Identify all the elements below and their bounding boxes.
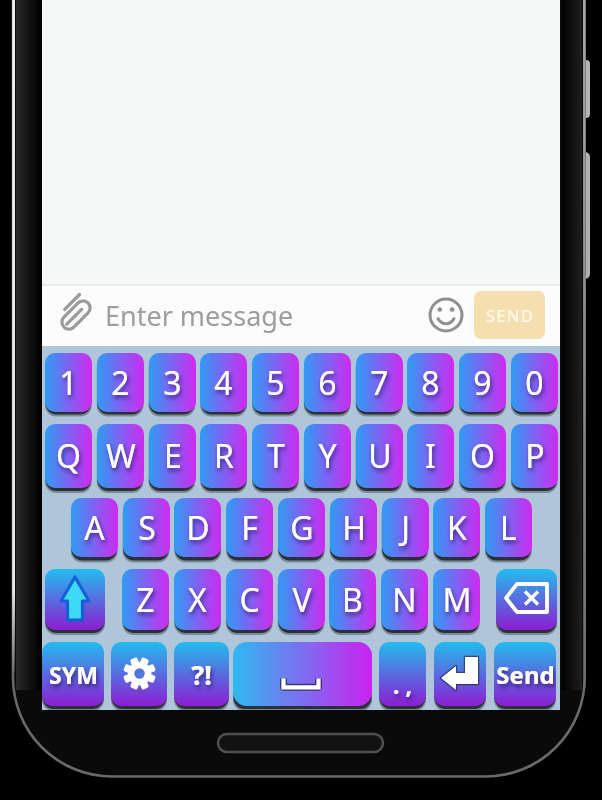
- button[interactable]: T: [252, 424, 299, 488]
- staticText: T: [267, 434, 285, 478]
- staticText: N: [392, 578, 417, 622]
- staticText: 5: [266, 361, 285, 405]
- button[interactable]: 9: [459, 353, 506, 412]
- button[interactable]: ?!: [174, 642, 229, 706]
- staticText: K: [447, 506, 467, 550]
- staticText: 8: [421, 361, 440, 405]
- button[interactable]: Z: [122, 569, 169, 630]
- button[interactable]: SYM: [42, 642, 104, 706]
- button[interactable]: D: [174, 498, 221, 557]
- staticText: 3: [163, 361, 182, 405]
- staticText: Y: [318, 434, 337, 478]
- button[interactable]: P: [511, 424, 558, 488]
- button[interactable]: K: [433, 498, 480, 557]
- staticText: . ,: [393, 669, 412, 700]
- staticText: 1: [59, 361, 78, 405]
- button[interactable]: B: [329, 569, 376, 630]
- staticText: B: [342, 578, 363, 622]
- staticText: 0: [525, 361, 544, 405]
- button[interactable]: H: [330, 498, 377, 557]
- button[interactable]: 3: [149, 353, 196, 412]
- staticText: Z: [136, 578, 155, 622]
- button[interactable]: G: [278, 498, 325, 557]
- staticText: C: [239, 578, 260, 622]
- staticText: 7: [370, 361, 389, 405]
- staticText: E: [164, 434, 182, 478]
- button[interactable]: [45, 569, 105, 630]
- staticText: O: [470, 434, 495, 478]
- button[interactable]: R: [200, 424, 247, 488]
- staticText: G: [290, 506, 314, 550]
- staticText: H: [342, 506, 366, 550]
- button[interactable]: 8: [407, 353, 454, 412]
- button[interactable]: 1: [45, 353, 92, 412]
- button[interactable]: SEND: [474, 291, 545, 339]
- button[interactable]: 7: [356, 353, 403, 412]
- button[interactable]: 0: [511, 353, 558, 412]
- staticText: 2: [111, 361, 130, 405]
- staticText: J: [401, 506, 410, 550]
- button[interactable]: Q: [45, 424, 92, 488]
- staticText: 4: [214, 361, 233, 405]
- button[interactable]: Y: [304, 424, 351, 488]
- button[interactable]: [496, 569, 557, 630]
- staticText: 9: [473, 361, 492, 405]
- button[interactable]: Send: [494, 642, 556, 706]
- staticText: W: [106, 434, 136, 478]
- button[interactable]: [233, 642, 372, 706]
- button[interactable]: S: [123, 498, 170, 557]
- staticText: L: [500, 506, 517, 550]
- button[interactable]: A: [71, 498, 118, 557]
- button[interactable]: O: [459, 424, 506, 488]
- staticText: S: [138, 506, 156, 550]
- button[interactable]: V: [278, 569, 325, 630]
- button[interactable]: W: [97, 424, 144, 488]
- button[interactable]: 2: [97, 353, 144, 412]
- button[interactable]: C: [226, 569, 273, 630]
- button[interactable]: N: [381, 569, 428, 630]
- staticText: Q: [56, 434, 81, 478]
- button[interactable]: U: [356, 424, 403, 488]
- staticText: F: [241, 506, 258, 550]
- button[interactable]: [111, 642, 167, 706]
- button[interactable]: 5: [252, 353, 299, 412]
- button[interactable]: X: [174, 569, 221, 630]
- button[interactable]: . ,: [379, 642, 426, 706]
- staticText: P: [525, 434, 545, 478]
- button[interactable]: I: [407, 424, 454, 488]
- staticText: A: [84, 506, 105, 550]
- staticText: X: [188, 578, 207, 622]
- staticText: V: [292, 578, 312, 622]
- staticText: SYM: [49, 659, 98, 690]
- staticText: I: [425, 434, 436, 478]
- staticText: ?!: [191, 656, 212, 693]
- button[interactable]: F: [226, 498, 273, 557]
- staticText: SEND: [486, 304, 534, 326]
- button[interactable]: 4: [200, 353, 247, 412]
- button[interactable]: M: [433, 569, 480, 630]
- staticText: Enter message: [105, 297, 294, 334]
- staticText: D: [186, 506, 210, 550]
- button[interactable]: L: [485, 498, 532, 557]
- button[interactable]: J: [382, 498, 429, 557]
- staticText: Send: [496, 658, 555, 691]
- staticText: M: [442, 578, 472, 622]
- button[interactable]: 6: [304, 353, 351, 412]
- staticText: 6: [318, 361, 337, 405]
- button[interactable]: [434, 642, 486, 706]
- button[interactable]: Enter message: [42, 285, 462, 346]
- staticText: R: [214, 434, 234, 478]
- staticText: U: [368, 434, 392, 478]
- button[interactable]: E: [149, 424, 196, 488]
